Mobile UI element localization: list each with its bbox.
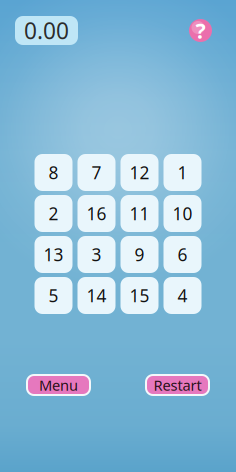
button[interactable]: 15	[120, 277, 158, 314]
staticText: 16	[86, 202, 106, 225]
button[interactable]: 5	[34, 277, 72, 314]
button[interactable]: 16	[77, 195, 115, 232]
staticText: 4	[177, 284, 187, 307]
button[interactable]: 11	[120, 195, 158, 232]
staticText: 3	[91, 243, 101, 266]
button[interactable]: 13	[34, 236, 72, 273]
button[interactable]: Menu	[26, 374, 91, 396]
staticText: Restart	[153, 375, 201, 395]
button[interactable]: 10	[163, 195, 201, 232]
button[interactable]: 9	[120, 236, 158, 273]
staticText: ?	[195, 16, 205, 45]
button[interactable]: 7	[77, 154, 115, 191]
staticText: 2	[48, 202, 58, 225]
staticText: 5	[48, 284, 58, 307]
staticText: 14	[86, 284, 106, 307]
button[interactable]: 1	[163, 154, 201, 191]
button[interactable]: 3	[77, 236, 115, 273]
staticText: 8	[48, 161, 58, 184]
button[interactable]: 2	[34, 195, 72, 232]
button[interactable]: 14	[77, 277, 115, 314]
button[interactable]: Help	[189, 19, 212, 42]
staticText: 9	[134, 243, 144, 266]
button[interactable]: 8	[34, 154, 72, 191]
staticText: Menu	[39, 375, 78, 395]
button[interactable]: 12	[120, 154, 158, 191]
staticText: 10	[172, 202, 192, 225]
button[interactable]: 6	[163, 236, 201, 273]
staticText: 11	[129, 202, 149, 225]
button[interactable]: Restart	[145, 374, 210, 396]
staticText: 0.00	[24, 15, 69, 45]
button[interactable]: 4	[163, 277, 201, 314]
staticText: 1	[177, 161, 187, 184]
staticText: 6	[177, 243, 187, 266]
staticText: 15	[129, 284, 149, 307]
staticText: 7	[91, 161, 101, 184]
staticText: 13	[43, 243, 63, 266]
staticText: 12	[129, 161, 149, 184]
